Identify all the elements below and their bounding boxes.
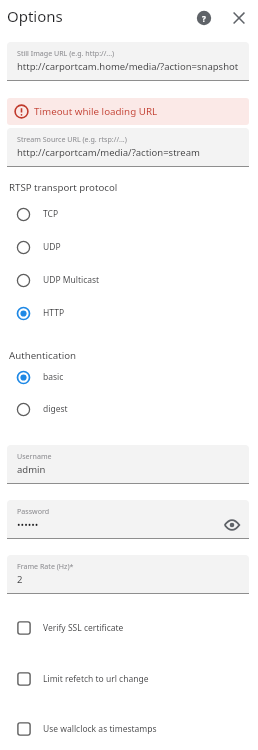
button[interactable]: Username (7, 445, 249, 484)
button[interactable]: basic (0, 361, 258, 393)
button[interactable]: Stream Source URL (e.g. rtsp://...) (7, 128, 249, 167)
staticText: 2 (17, 573, 23, 586)
button[interactable]: Show password (221, 514, 243, 536)
button[interactable]: Close (226, 5, 252, 31)
staticText: Options (7, 6, 63, 26)
button[interactable]: Verify SSL certificate (0, 608, 258, 648)
staticText: http://carportcam/media/?action=stream (17, 146, 200, 159)
staticText: Use wallclock as timestamps (43, 723, 157, 735)
staticText: Stream Source URL (e.g. rtsp://...) (17, 134, 127, 144)
staticText: HTTP (43, 307, 65, 319)
button[interactable]: HTTP (0, 297, 258, 329)
staticText: admin (17, 463, 46, 476)
staticText: RTSP transport protocol (9, 181, 118, 194)
staticText: ? (202, 13, 206, 24)
staticText: Password (17, 506, 50, 516)
staticText: Authentication (9, 349, 77, 362)
staticText: UDP (43, 241, 61, 253)
button[interactable]: TCP (0, 198, 258, 230)
button[interactable]: Help (191, 5, 217, 31)
staticText: Still Image URL (e.g. http://...) (17, 48, 115, 58)
staticText: Frame Rate (Hz)* (17, 561, 74, 571)
button[interactable]: Timeout while loading URL (7, 98, 249, 125)
staticText: Username (17, 451, 52, 461)
button[interactable]: Password (7, 500, 249, 539)
staticText: UDP Multicast (43, 274, 100, 286)
button[interactable]: Limit refetch to url change (0, 659, 258, 699)
staticText: Verify SSL certificate (43, 622, 124, 634)
staticText: digest (43, 403, 68, 415)
button[interactable]: Frame Rate (Hz)* (7, 555, 249, 594)
button[interactable]: Use wallclock as timestamps (0, 709, 258, 749)
staticText: TCP (43, 208, 59, 220)
staticText: •••••• (17, 518, 39, 531)
button[interactable]: UDP Multicast (0, 264, 258, 296)
staticText: basic (43, 371, 64, 383)
button[interactable]: UDP (0, 231, 258, 263)
staticText: http://carportcam.home/media/?action=sna… (17, 60, 239, 73)
staticText: Timeout while loading URL (34, 105, 158, 118)
button[interactable]: digest (0, 393, 258, 425)
staticText: Limit refetch to url change (43, 673, 149, 685)
button[interactable]: Still Image URL (e.g. http://...) (7, 42, 249, 81)
